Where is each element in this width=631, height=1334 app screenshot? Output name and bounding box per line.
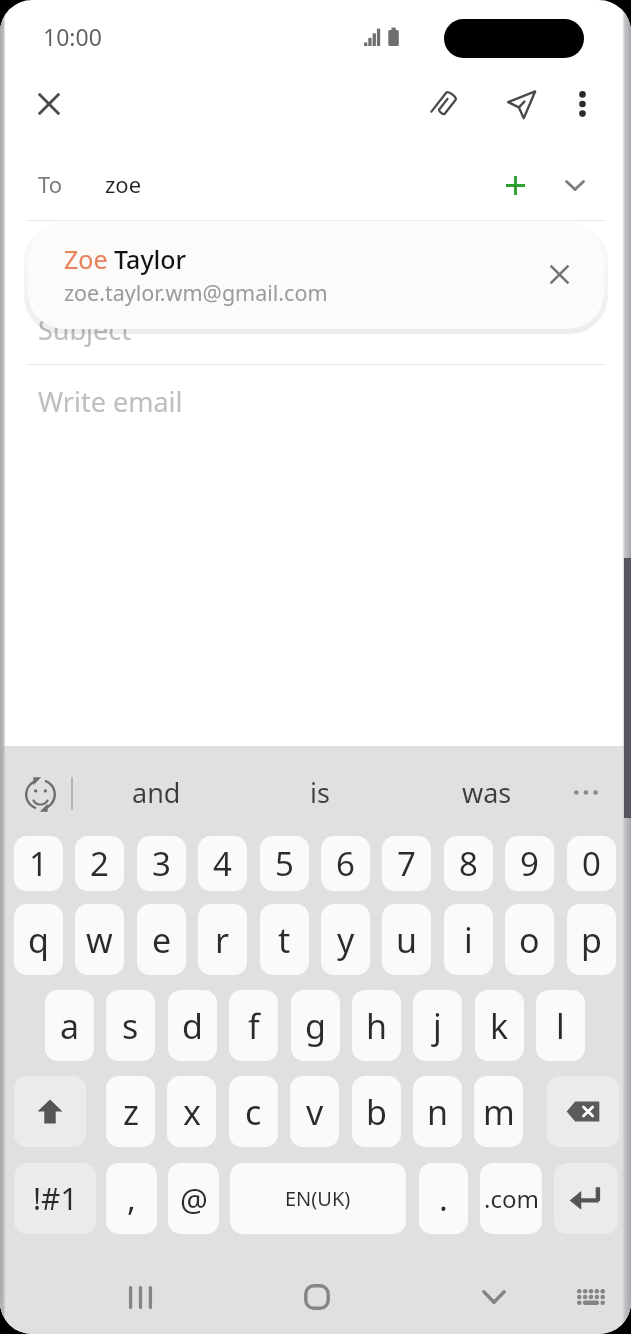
staticText: 4 [213,841,232,886]
button[interactable]: Zoe Taylor [28,222,604,329]
button[interactable]: 3 [137,836,186,891]
staticText: 5 [275,841,294,886]
staticText: k [490,1003,509,1049]
staticText: 8 [459,841,478,886]
button[interactable]: x [167,1076,216,1147]
button[interactable]: w [75,904,124,975]
staticText: l [556,1003,565,1049]
button[interactable]: k [475,990,524,1061]
button[interactable]: o [505,904,554,975]
button[interactable]: r [198,904,247,975]
staticText: b [366,1089,387,1135]
button[interactable]: Close [21,76,77,132]
staticText: 9 [520,841,539,886]
button[interactable]: 5 [260,836,309,891]
button[interactable]: f [229,990,278,1061]
staticText: i [464,917,473,963]
button[interactable]: .com [480,1163,542,1234]
button[interactable]: b [352,1076,401,1147]
button[interactable]: More options [554,76,610,132]
button[interactable]: c [229,1076,278,1147]
staticText: 2 [90,841,109,886]
button[interactable]: is [250,752,390,832]
button[interactable]: 2 [75,836,124,891]
button[interactable]: g [291,990,340,1061]
staticText: g [305,1003,326,1049]
staticText: is [310,774,330,811]
button[interactable]: , [106,1163,157,1234]
button[interactable]: . [419,1163,468,1234]
staticText: d [182,1003,203,1049]
button[interactable]: and [86,752,226,832]
button[interactable]: l [536,990,585,1061]
staticText: x [183,1089,201,1135]
button[interactable]: Hide keyboard [461,1264,527,1330]
staticText: e [152,917,172,963]
button[interactable]: z [106,1076,155,1147]
staticText: EN(UK) [285,1185,351,1212]
button[interactable]: 0 [567,836,616,891]
button[interactable]: d [168,990,217,1061]
button[interactable]: was [417,752,557,832]
button[interactable]: Enter [554,1163,618,1234]
button[interactable]: Send [493,76,549,132]
button[interactable]: t [260,904,309,975]
button[interactable]: j [413,990,462,1061]
button[interactable]: Remove recipient [532,247,586,301]
button[interactable]: 6 [321,836,370,891]
button[interactable]: Add recipient [488,158,542,212]
staticText: v [306,1089,324,1135]
button[interactable]: @ [168,1163,219,1234]
staticText: t [278,917,291,963]
button[interactable]: Attach file [419,76,475,132]
staticText: r [215,917,230,963]
staticText: j [433,1003,442,1049]
button[interactable]: i [444,904,493,975]
button[interactable]: y [321,904,370,975]
button[interactable]: m [474,1076,523,1147]
staticText: h [366,1003,388,1049]
staticText: c [245,1089,262,1135]
button[interactable]: p [567,904,616,975]
button[interactable]: Expand recipients [548,158,602,212]
staticText: 3 [152,841,171,886]
button[interactable]: More suggestions [560,766,612,818]
button[interactable]: Emoji [12,766,68,822]
button[interactable]: 7 [382,836,431,891]
staticText: To [38,169,63,199]
button[interactable]: s [106,990,155,1061]
button[interactable]: 4 [198,836,247,891]
button[interactable]: q [14,904,63,975]
button[interactable]: 1 [14,836,63,891]
button[interactable]: a [45,990,94,1061]
button[interactable]: !#1 [14,1163,96,1234]
button[interactable]: Home [284,1264,350,1330]
button[interactable]: Shift [14,1076,86,1147]
button[interactable]: v [290,1076,339,1147]
staticText: o [519,917,540,963]
staticText: f [248,1003,260,1049]
staticText: u [396,917,418,963]
button[interactable]: Recent apps [107,1264,173,1330]
staticText: zoe [105,169,142,199]
button[interactable]: Backspace [547,1076,619,1147]
staticText: zoe.taylor.wm@gmail.com [64,278,328,307]
staticText: was [462,774,512,811]
button[interactable]: Keyboard layout [558,1264,624,1330]
button[interactable]: e [137,904,186,975]
staticText: Zoe Taylor [64,242,187,276]
button[interactable]: n [413,1076,462,1147]
staticText: , [127,1176,136,1221]
button[interactable]: 8 [444,836,493,891]
button[interactable]: h [352,990,401,1061]
staticText: !#1 [33,1178,78,1219]
button[interactable]: EN(UK) [230,1163,406,1234]
staticText: 7 [397,841,416,886]
staticText: Write email [38,383,183,420]
button[interactable]: 9 [505,836,554,891]
staticText: q [28,917,49,963]
staticText: s [122,1003,139,1049]
staticText: 0 [582,841,601,886]
staticText: n [427,1089,449,1135]
button[interactable]: u [382,904,431,975]
